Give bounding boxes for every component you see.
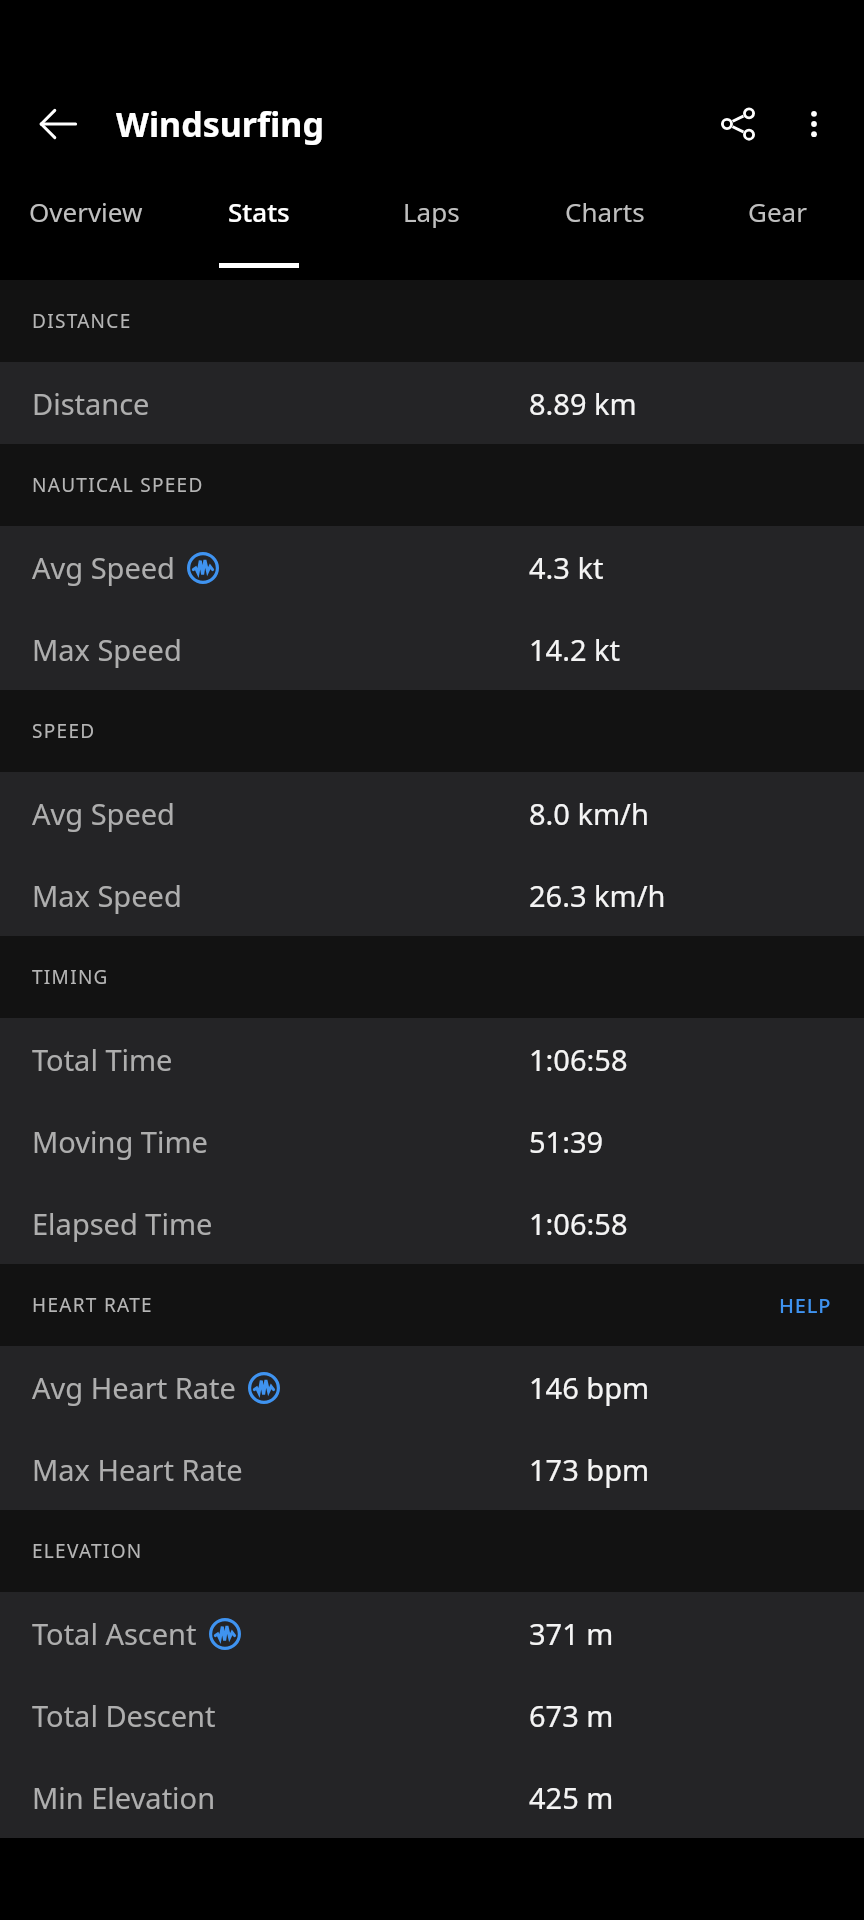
button[interactable]: Avg Heart Rate	[0, 1346, 864, 1428]
staticText: Gear	[748, 194, 807, 229]
button[interactable]: Min Elevation	[0, 1756, 864, 1838]
button[interactable]: Stats	[172, 176, 345, 280]
button[interactable]: Moving Time	[0, 1100, 864, 1182]
staticText: Avg Speed	[32, 794, 175, 833]
button[interactable]: Gear	[691, 176, 864, 280]
button[interactable]: Total Time	[0, 1018, 864, 1100]
staticText: 425 m	[529, 1778, 614, 1817]
button[interactable]: Max Speed	[0, 854, 864, 936]
staticText: HELP	[779, 1292, 832, 1319]
staticText: TIMING	[32, 964, 109, 990]
button[interactable]: Elapsed Time	[0, 1182, 864, 1264]
button[interactable]: Avg Speed	[0, 772, 864, 854]
button[interactable]: Max Heart Rate	[0, 1428, 864, 1510]
staticText: 371 m	[529, 1614, 614, 1653]
button[interactable]: Back	[22, 88, 94, 160]
button[interactable]: Avg Speed	[0, 526, 864, 608]
staticText: 8.0 km/h	[529, 794, 649, 833]
staticText: Total Time	[32, 1040, 173, 1079]
staticText: 1:06:58	[529, 1040, 628, 1079]
button[interactable]: More options	[778, 88, 850, 160]
staticText: Avg Speed	[32, 548, 175, 587]
staticText: 146 bpm	[529, 1368, 650, 1407]
button[interactable]: Overview	[0, 176, 172, 280]
staticText: Elapsed Time	[32, 1204, 213, 1243]
staticText: Distance	[32, 384, 150, 423]
staticText: Charts	[565, 194, 645, 229]
staticText: 26.3 km/h	[529, 876, 666, 915]
staticText: SPEED	[32, 718, 96, 744]
staticText: Avg Heart Rate	[32, 1368, 236, 1407]
button[interactable]: Max Speed	[0, 608, 864, 690]
staticText: DISTANCE	[32, 308, 132, 334]
staticText: 173 bpm	[529, 1450, 650, 1489]
button[interactable]: Charts	[518, 176, 691, 280]
staticText: Max Heart Rate	[32, 1450, 243, 1489]
staticText: Windsurfing	[116, 101, 324, 147]
staticText: Max Speed	[32, 876, 182, 915]
staticText: Overview	[29, 194, 143, 229]
staticText: 4.3 kt	[529, 548, 604, 587]
staticText: NAUTICAL SPEED	[32, 472, 204, 498]
staticText: HEART RATE	[32, 1292, 153, 1318]
staticText: 51:39	[529, 1122, 604, 1161]
staticText: Moving Time	[32, 1122, 208, 1161]
staticText: Stats	[228, 194, 290, 229]
staticText: 14.2 kt	[529, 630, 621, 669]
staticText: Min Elevation	[32, 1778, 216, 1817]
staticText: Total Ascent	[32, 1614, 197, 1653]
staticText: 8.89 km	[529, 384, 637, 423]
staticText: 1:06:58	[529, 1204, 628, 1243]
staticText: Laps	[403, 194, 460, 229]
staticText: Total Descent	[32, 1696, 216, 1735]
button[interactable]: Distance	[0, 362, 864, 444]
staticText: ELEVATION	[32, 1538, 143, 1564]
button[interactable]: HELP	[779, 1292, 832, 1319]
button[interactable]: Laps	[345, 176, 518, 280]
staticText: Max Speed	[32, 630, 182, 669]
button[interactable]: Share	[698, 84, 778, 164]
button[interactable]: Total Ascent	[0, 1592, 864, 1674]
staticText: 673 m	[529, 1696, 614, 1735]
button[interactable]: Total Descent	[0, 1674, 864, 1756]
